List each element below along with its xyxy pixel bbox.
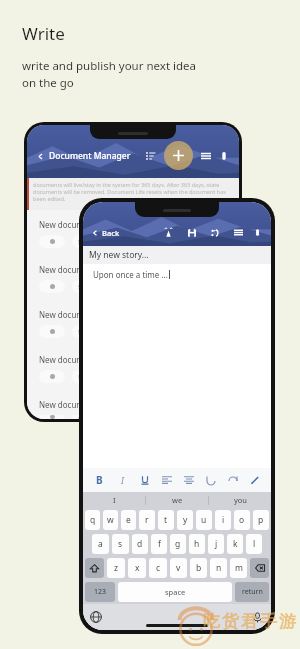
button[interactable]: d — [132, 534, 148, 554]
button[interactable]: f — [151, 534, 167, 554]
button[interactable]: Share — [208, 226, 222, 240]
button[interactable]: we — [146, 492, 208, 508]
button[interactable]: g — [170, 534, 186, 554]
staticText: w — [107, 514, 114, 526]
button[interactable]: Upon once a time ... — [83, 264, 271, 468]
button[interactable]: Dictate — [161, 225, 176, 240]
button[interactable]: New document — [27, 345, 239, 390]
button[interactable]: Document Manager — [34, 148, 133, 164]
staticText: I — [121, 474, 124, 486]
staticText: documents will live/stay in the system f… — [33, 181, 220, 188]
staticText: s — [118, 538, 123, 550]
staticText: m — [235, 562, 243, 574]
button[interactable]: Italic — [111, 468, 134, 492]
staticText: been edited. — [33, 195, 66, 202]
button[interactable]: space — [118, 582, 232, 602]
staticText: d — [137, 538, 143, 550]
staticText: y — [183, 514, 188, 526]
button[interactable]: Align center — [178, 468, 200, 492]
staticText: q — [90, 514, 96, 526]
button[interactable]: o — [234, 510, 250, 530]
button[interactable]: z — [107, 558, 125, 578]
button[interactable]: w — [103, 510, 118, 530]
button[interactable]: v — [170, 558, 187, 578]
button[interactable]: u — [196, 510, 212, 530]
staticText: Story — [78, 238, 92, 245]
button[interactable]: b — [190, 558, 207, 578]
staticText: u — [201, 514, 207, 526]
button[interactable]: New document — [27, 300, 239, 345]
button[interactable]: Shift — [85, 558, 104, 578]
button[interactable]: Sort — [143, 148, 159, 164]
button[interactable]: More options — [217, 149, 231, 163]
button[interactable]: p — [253, 510, 269, 530]
button[interactable]: Save — [185, 226, 199, 240]
staticText: documents will be removed. Document Life… — [33, 188, 226, 195]
staticText: e — [126, 514, 131, 526]
button[interactable]: Edit — [244, 468, 266, 492]
button[interactable]: Menu — [231, 225, 246, 240]
button[interactable]: New document — [27, 390, 239, 419]
button[interactable]: Align left — [156, 468, 178, 492]
button[interactable]: s — [112, 534, 129, 554]
staticText: o — [239, 514, 245, 526]
staticText: New document — [39, 264, 97, 275]
button[interactable]: t — [158, 510, 174, 530]
staticText: 游 — [279, 611, 296, 632]
staticText: New document — [39, 354, 97, 365]
staticText: space — [165, 587, 186, 597]
staticText: c — [156, 562, 161, 574]
staticText: B — [96, 473, 103, 487]
button[interactable]: e — [121, 510, 136, 530]
staticText: I — [113, 495, 116, 505]
staticText: h — [194, 538, 200, 550]
button[interactable]: m — [230, 558, 247, 578]
button[interactable]: c — [149, 558, 167, 578]
button[interactable]: return — [235, 582, 269, 602]
button[interactable]: x — [128, 558, 146, 578]
staticText: x — [135, 562, 140, 574]
staticText: New document — [39, 309, 97, 320]
button[interactable]: i — [215, 510, 231, 530]
button[interactable]: l — [246, 534, 262, 554]
button[interactable]: Underline — [134, 468, 156, 492]
button[interactable]: q — [85, 510, 100, 530]
staticText: you — [234, 495, 247, 505]
button[interactable]: New document — [27, 255, 239, 300]
button[interactable]: Undo — [200, 468, 222, 492]
staticText: we — [172, 495, 183, 505]
button[interactable]: Change keyboard — [90, 611, 102, 623]
staticText: Story — [78, 373, 92, 380]
button[interactable]: y — [177, 510, 193, 530]
button[interactable]: Back — [89, 226, 122, 240]
staticText: t — [164, 514, 168, 526]
staticText: 手 — [260, 611, 277, 632]
staticText: 123 — [94, 587, 107, 597]
button[interactable]: you — [209, 492, 271, 508]
button[interactable]: j — [208, 534, 224, 554]
button[interactable]: n — [210, 558, 227, 578]
button[interactable]: 123 — [85, 582, 115, 602]
button[interactable]: Bold — [88, 468, 111, 492]
button[interactable]: Dictation — [252, 612, 263, 623]
button[interactable]: Menu — [198, 148, 214, 164]
button[interactable]: Redo — [222, 468, 244, 492]
staticText: b — [196, 562, 202, 574]
button[interactable]: Backspace — [250, 558, 269, 578]
button[interactable]: k — [227, 534, 243, 554]
button[interactable]: More options — [251, 226, 264, 239]
button[interactable]: Add document — [164, 141, 193, 170]
staticText: Upon once a time ... — [93, 269, 168, 280]
staticText: My new story... — [89, 249, 149, 261]
staticText: i — [222, 514, 225, 526]
button[interactable]: h — [189, 534, 205, 554]
button[interactable]: a — [92, 534, 109, 554]
button[interactable]: New document — [27, 210, 239, 255]
staticText: p — [258, 514, 264, 526]
button[interactable]: I — [83, 492, 145, 508]
staticText: Document Manager — [49, 150, 131, 162]
staticText: Story — [78, 415, 92, 419]
staticText: 吃 — [203, 611, 220, 632]
staticText: j — [215, 538, 218, 550]
button[interactable]: r — [139, 510, 155, 530]
